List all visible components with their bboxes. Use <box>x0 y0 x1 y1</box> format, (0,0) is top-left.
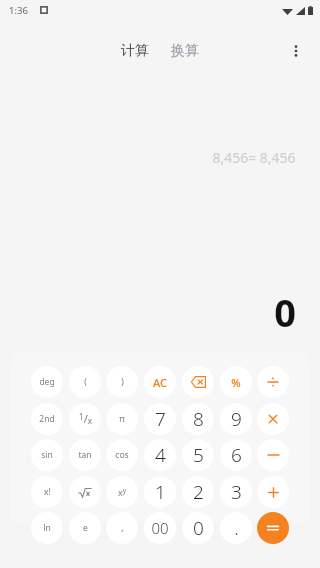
staticText: 8,456= 8,456 <box>212 148 296 167</box>
button[interactable]: π <box>106 403 138 435</box>
button[interactable]: 9 <box>220 403 252 435</box>
button[interactable]: % <box>220 366 252 398</box>
button[interactable] <box>257 403 289 435</box>
button[interactable]: , <box>106 512 138 544</box>
staticText: x! <box>44 486 51 498</box>
button[interactable] <box>257 512 289 544</box>
staticText: π <box>119 413 125 425</box>
button[interactable] <box>257 366 289 398</box>
staticText: 2 <box>193 479 204 505</box>
staticText: . <box>234 515 239 541</box>
button[interactable]: 5 <box>182 439 214 471</box>
staticText: 3 <box>231 479 242 505</box>
staticText: 6 <box>231 442 242 468</box>
button[interactable]: More options <box>280 35 312 67</box>
staticText: 4 <box>155 442 166 468</box>
staticText: cos <box>115 449 129 461</box>
button[interactable]: 8 <box>182 403 214 435</box>
staticText: 0 <box>274 286 296 338</box>
staticText: 7 <box>155 406 166 432</box>
button[interactable]: 7 <box>144 403 176 435</box>
button[interactable]: 1/x <box>69 403 101 435</box>
button[interactable]: 换算 <box>165 38 205 64</box>
button[interactable]: ) <box>106 366 138 398</box>
staticText: 换算 <box>171 42 199 60</box>
button[interactable]: x! <box>31 476 63 508</box>
button[interactable] <box>257 476 289 508</box>
staticText: xy <box>118 486 127 498</box>
staticText: AC <box>153 375 167 390</box>
staticText: 1 <box>155 479 166 505</box>
button[interactable]: . <box>220 512 252 544</box>
button[interactable]: ( <box>69 366 101 398</box>
button[interactable]: 计算 <box>115 38 155 64</box>
staticText: 1:36 <box>9 4 28 17</box>
button[interactable]: e <box>69 512 101 544</box>
button[interactable]: AC <box>144 366 176 398</box>
button[interactable]: 0 <box>182 512 214 544</box>
staticText: 8 <box>193 406 204 432</box>
button[interactable]: ln <box>31 512 63 544</box>
button[interactable]: deg <box>31 366 63 398</box>
button[interactable]: 2nd <box>31 403 63 435</box>
button[interactable]: 3 <box>220 476 252 508</box>
staticText: tan <box>78 449 92 461</box>
button[interactable]: 1 <box>144 476 176 508</box>
staticText: , <box>121 522 124 534</box>
button[interactable]: Backspace <box>182 366 214 398</box>
button[interactable]: 2 <box>182 476 214 508</box>
button[interactable] <box>257 439 289 471</box>
staticText: e <box>83 522 88 534</box>
button[interactable]: xy <box>106 476 138 508</box>
staticText: 计算 <box>121 42 149 60</box>
button[interactable]: tan <box>69 439 101 471</box>
staticText: ln <box>43 522 51 534</box>
staticText: ) <box>121 376 124 388</box>
staticText: 2nd <box>39 413 55 425</box>
button[interactable]: 00 <box>144 512 176 544</box>
staticText: % <box>231 375 241 390</box>
button[interactable]: 4 <box>144 439 176 471</box>
staticText: ( <box>84 376 87 388</box>
staticText: 9 <box>231 406 242 432</box>
staticText: 5 <box>193 442 204 468</box>
button[interactable]: cos <box>106 439 138 471</box>
staticText: deg <box>39 376 55 388</box>
button[interactable] <box>69 476 101 508</box>
staticText: 0 <box>193 515 204 541</box>
staticText: sin <box>41 449 53 461</box>
button[interactable]: 6 <box>220 439 252 471</box>
button[interactable]: sin <box>31 439 63 471</box>
staticText: 1/x <box>79 411 92 427</box>
staticText: 00 <box>151 518 169 538</box>
